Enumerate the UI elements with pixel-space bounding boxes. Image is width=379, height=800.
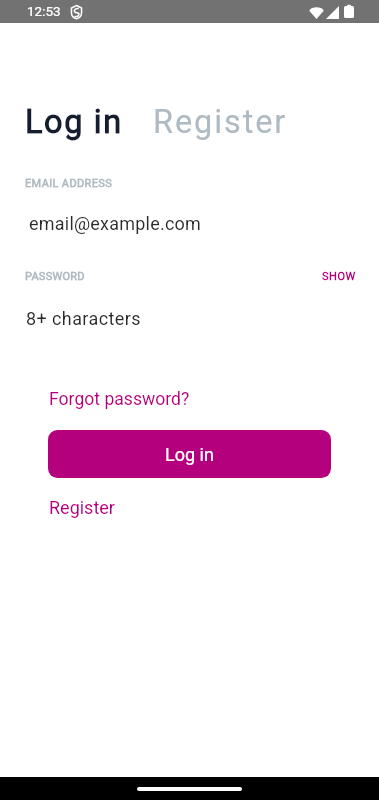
- button[interactable]: SHOW: [322, 270, 356, 283]
- staticText: 8+ characters: [26, 308, 141, 329]
- staticText: SHOW: [322, 270, 356, 283]
- other: Mobile signal: [326, 6, 339, 19]
- button[interactable]: Log in: [25, 103, 123, 141]
- staticText: Register: [49, 497, 115, 518]
- staticText: email@example.com: [29, 213, 202, 234]
- other: Wi-Fi: [309, 6, 324, 19]
- staticText: Log in: [165, 444, 214, 465]
- staticText: PASSWORD: [25, 270, 85, 283]
- button[interactable]: Forgot password?: [49, 389, 190, 410]
- staticText: Forgot password?: [49, 389, 190, 410]
- button[interactable]: Home: [137, 787, 242, 791]
- button[interactable]: Register: [49, 497, 115, 518]
- button[interactable]: EMAIL ADDRESS: [14, 168, 365, 240]
- staticText: Register: [153, 103, 288, 141]
- staticText: 12:53: [27, 3, 61, 19]
- other: VPN active: [71, 5, 82, 19]
- button[interactable]: PASSWORD: [14, 262, 304, 332]
- other: Battery: [344, 4, 354, 18]
- button[interactable]: Log in: [48, 430, 331, 478]
- button[interactable]: Register: [153, 103, 288, 141]
- staticText: EMAIL ADDRESS: [25, 177, 113, 190]
- staticText: Log in: [25, 103, 123, 141]
